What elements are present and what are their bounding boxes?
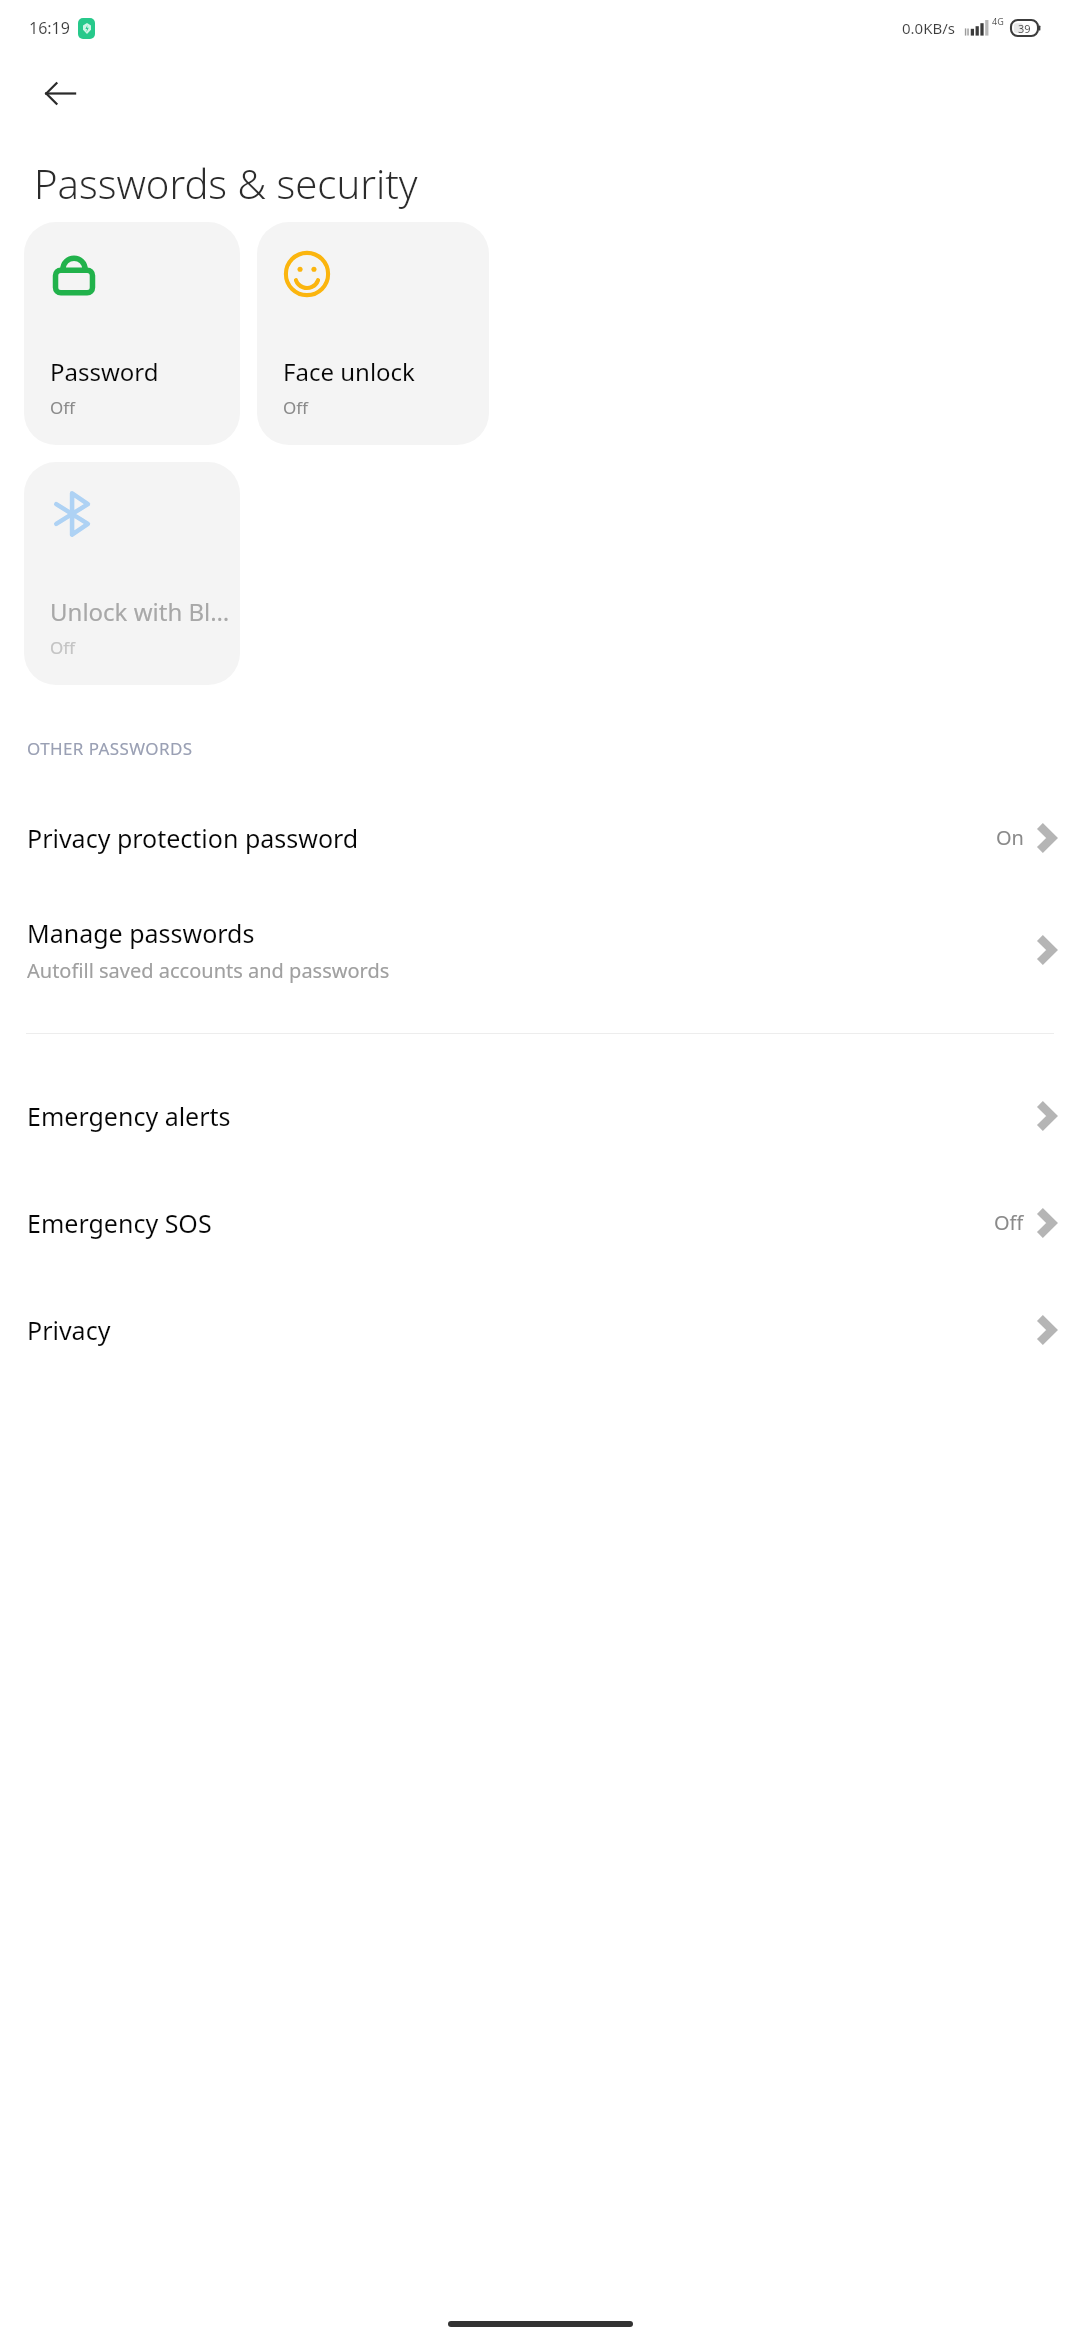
staticText: Manage passwords bbox=[27, 916, 255, 950]
button[interactable]: Manage passwords bbox=[0, 891, 1080, 1009]
staticText: 39 bbox=[1018, 21, 1031, 36]
staticText: 0.0KB/s bbox=[902, 18, 955, 38]
staticText: Emergency SOS bbox=[27, 1206, 212, 1240]
staticText: On bbox=[996, 824, 1024, 851]
staticText: Off bbox=[994, 1209, 1024, 1236]
button[interactable]: Emergency SOS bbox=[0, 1169, 1080, 1276]
staticText: Privacy protection password bbox=[27, 821, 359, 855]
staticText: Emergency alerts bbox=[27, 1099, 231, 1133]
button[interactable]: Privacy bbox=[0, 1276, 1080, 1383]
staticText: Face unlock bbox=[283, 355, 415, 388]
button[interactable]: Face unlock bbox=[257, 222, 489, 445]
staticText: 4G bbox=[992, 15, 1004, 27]
staticText: 16:19 bbox=[29, 17, 70, 39]
staticText: Off bbox=[50, 396, 75, 419]
staticText: Off bbox=[50, 636, 75, 659]
staticText: Autofill saved accounts and passwords bbox=[27, 957, 390, 984]
staticText: Unlock with Bl… bbox=[50, 595, 230, 628]
staticText: OTHER PASSWORDS bbox=[27, 737, 193, 760]
staticText: Off bbox=[283, 396, 308, 419]
button[interactable]: Back bbox=[36, 69, 84, 117]
button[interactable]: Password bbox=[24, 222, 240, 445]
button[interactable]: Unlock with Bl… bbox=[24, 462, 240, 685]
staticText: Privacy bbox=[27, 1313, 111, 1347]
button[interactable]: Emergency alerts bbox=[0, 1062, 1080, 1169]
staticText: Password bbox=[50, 355, 159, 388]
button[interactable]: Privacy protection password bbox=[0, 784, 1080, 891]
staticText: Passwords & security bbox=[34, 156, 418, 210]
